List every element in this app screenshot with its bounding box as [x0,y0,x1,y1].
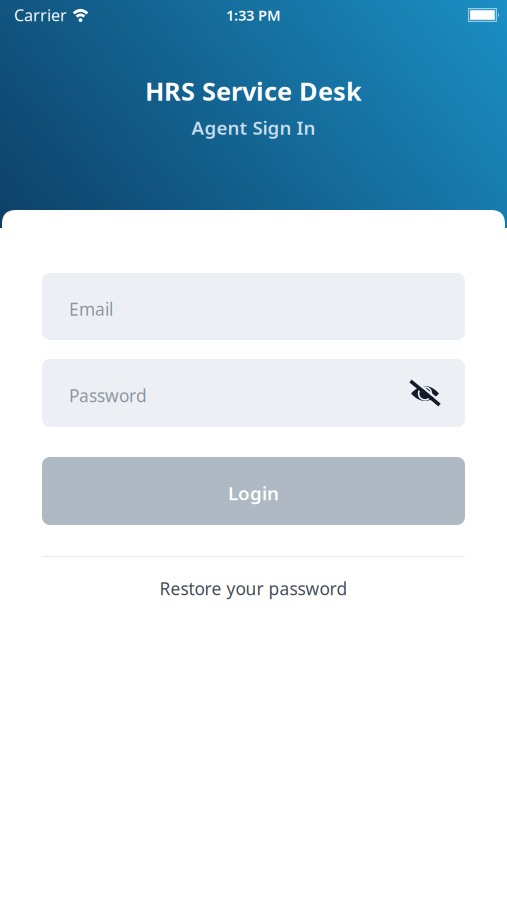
staticText: 1:33 PM [226,5,281,25]
button[interactable]: Password [42,359,465,427]
staticText: HRS Service Desk [145,74,362,108]
staticText: Agent Sign In [191,115,315,140]
button[interactable]: Email [42,273,465,340]
staticText: Carrier [14,4,67,26]
staticText: Password [69,384,147,407]
button[interactable]: Login [42,457,465,525]
staticText: Restore your password [159,577,347,600]
staticText: Email [69,297,113,320]
button[interactable]: Restore your password [159,577,347,600]
staticText: Login [228,481,279,505]
